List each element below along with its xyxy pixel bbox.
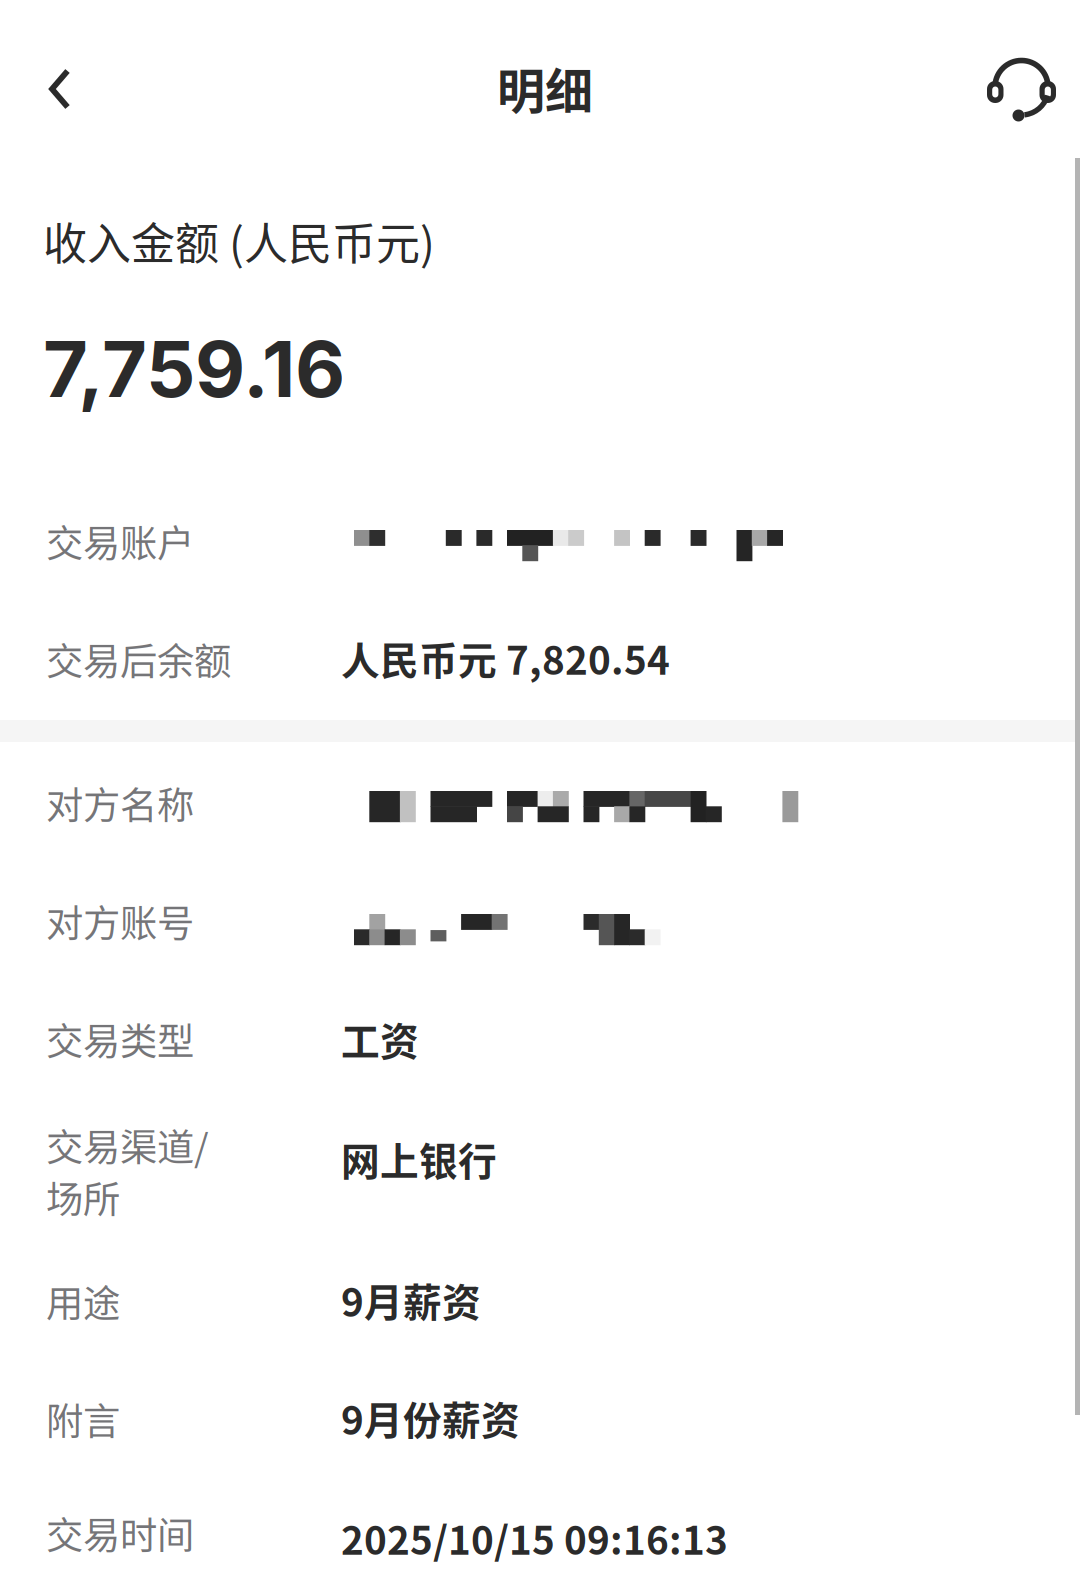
staticText: 附言 <box>46 1392 120 1446</box>
staticText: 交易后余额 <box>46 632 231 686</box>
staticText: 明细 <box>497 53 593 122</box>
staticText: 场所 <box>46 1170 120 1224</box>
staticText: 9月薪资 <box>341 1272 481 1328</box>
staticText: 对方名称 <box>46 776 194 830</box>
button[interactable]: Back <box>3 23 123 155</box>
staticText: 7,759.16 <box>43 322 345 416</box>
staticText: 收入金额 (人民币元) <box>43 209 435 273</box>
staticText: 工资 <box>341 1011 419 1067</box>
staticText: 交易渠道/ <box>46 1118 209 1172</box>
staticText: 9月份薪资 <box>341 1390 520 1446</box>
staticText: 网上银行 <box>341 1131 497 1187</box>
staticText: 交易类型 <box>46 1012 194 1066</box>
staticText: 人民币元 7,820.54 <box>341 630 670 686</box>
staticText: 交易账户 <box>46 514 194 568</box>
staticText: 交易时间 <box>46 1506 194 1560</box>
staticText: 2025/10/15 09:16:13 <box>341 1510 728 1566</box>
button[interactable]: Customer service <box>951 26 1080 159</box>
staticText: 对方账号 <box>46 894 194 948</box>
staticText: 用途 <box>46 1274 120 1328</box>
